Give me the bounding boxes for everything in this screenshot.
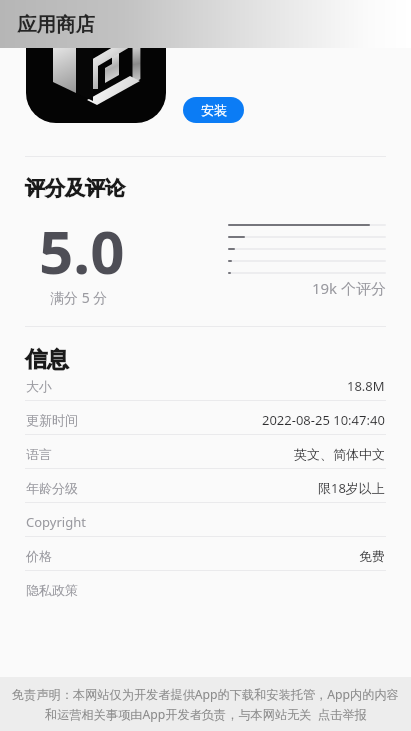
staticText: 英文、简体中文: [294, 446, 385, 462]
button[interactable]: 更新时间: [0, 401, 411, 434]
staticText: 18.8M: [347, 377, 385, 395]
staticText: 免费: [359, 548, 385, 564]
staticText: 2022-08-25 10:47:40: [262, 411, 385, 429]
staticText: 满分 5 分: [50, 288, 108, 307]
other: App icon: [26, 0, 166, 123]
staticText: 和运营相关事项由App开发者负责，与本网站无关 点击举报: [45, 706, 367, 723]
staticText: 免责声明：本网站仅为开发者提供App的下载和安装托管，App内的内容: [12, 686, 399, 703]
staticText: 语言: [26, 446, 52, 462]
button[interactable]: 安装: [183, 97, 244, 123]
staticText: Copyright: [26, 513, 86, 531]
staticText: 应用商店: [17, 12, 95, 37]
staticText: 大小: [26, 378, 52, 394]
button[interactable]: Copyright: [0, 503, 411, 536]
button[interactable]: 大小: [0, 367, 411, 400]
staticText: 安装: [201, 102, 227, 118]
staticText: 年龄分级: [26, 480, 78, 496]
button[interactable]: 语言: [0, 435, 411, 468]
staticText: 价格: [26, 548, 52, 564]
staticText: 5.0: [39, 210, 125, 292]
staticText: 限18岁以上: [318, 479, 385, 497]
staticText: 信息: [25, 346, 69, 374]
button[interactable]: 年龄分级: [0, 469, 411, 502]
staticText: 隐私政策: [26, 582, 78, 598]
staticText: 19k 个评分: [0, 278, 386, 298]
staticText: 评分及评论: [25, 176, 125, 201]
button[interactable]: 价格: [0, 537, 411, 570]
button[interactable]: 隐私政策: [0, 571, 411, 604]
staticText: 更新时间: [26, 412, 78, 428]
button[interactable]: 应用商店: [0, 0, 411, 48]
